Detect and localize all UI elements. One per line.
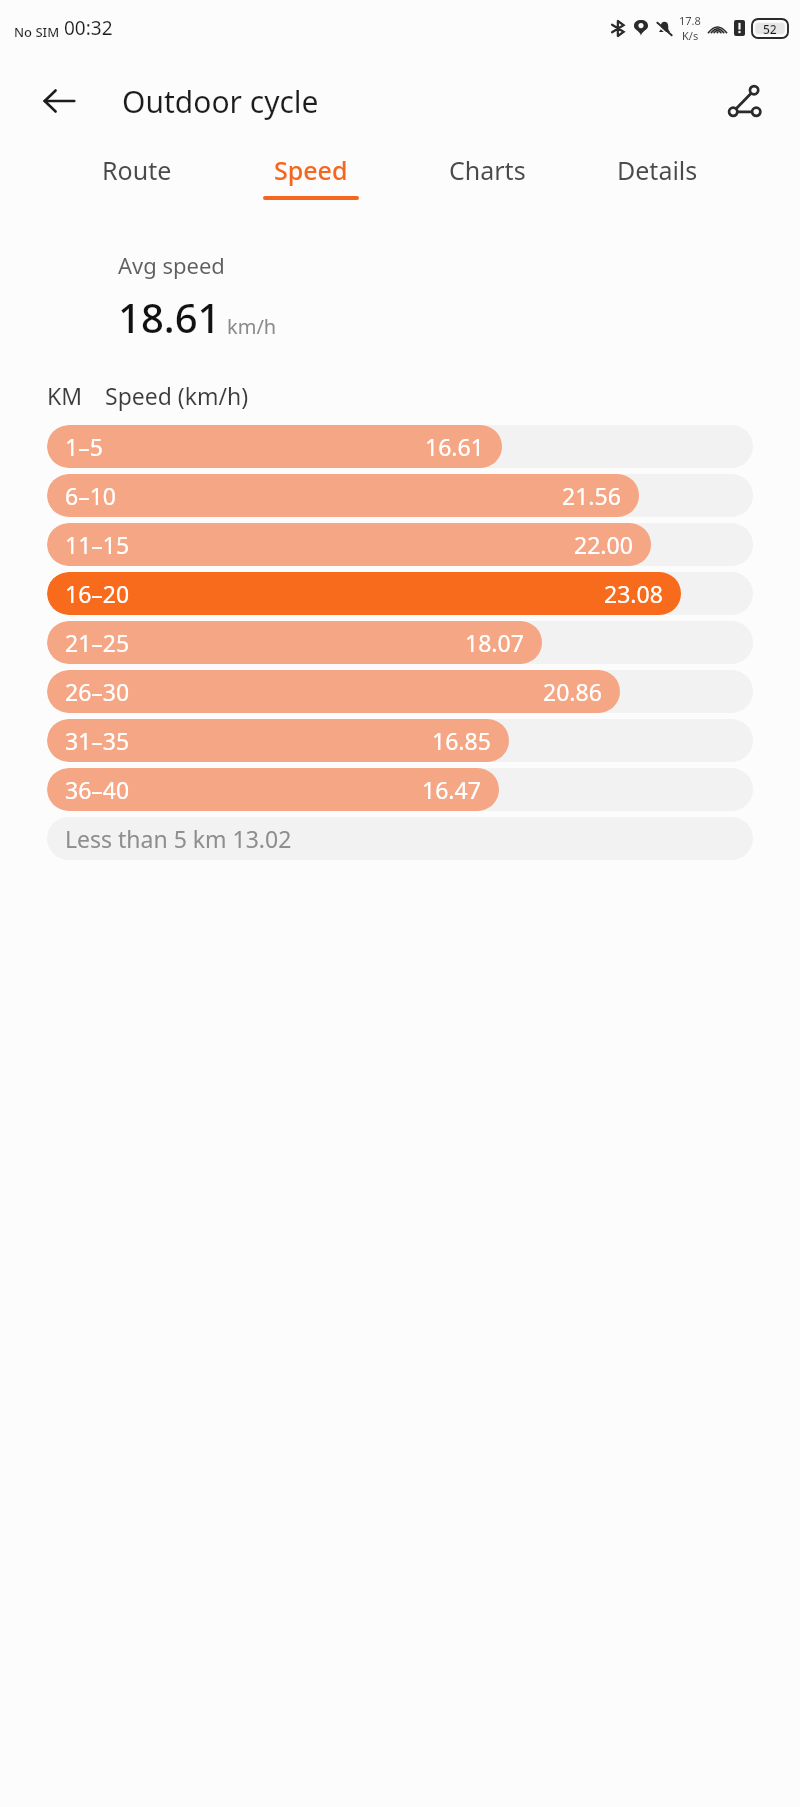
staticText: 22.00 [574,529,633,560]
button[interactable]: 36–40 [47,768,753,811]
button[interactable]: Less than 5 km 13.02 [47,817,753,860]
staticText: 23.08 [604,578,663,609]
staticText: 6–10 [65,480,116,511]
staticText: Charts [449,153,526,187]
staticText: Less than 5 km 13.02 [65,823,292,854]
staticText: K/s [682,28,699,43]
staticText: 11–15 [65,529,130,560]
button[interactable]: Speed [257,147,365,206]
staticText: 31–35 [65,725,130,756]
staticText: km/h [227,313,277,340]
staticText: KM [47,380,83,411]
staticText: 18.61 [118,290,221,344]
staticText: 16–20 [65,578,130,609]
staticText: 21–25 [65,627,130,658]
staticText: 17.8 [679,13,701,28]
staticText: Outdoor cycle [122,81,319,122]
button[interactable]: Back [34,76,84,126]
staticText: 52 [763,21,777,37]
staticText: 00:32 [64,15,113,41]
staticText: 16.47 [422,774,481,805]
staticText: Avg speed [118,250,225,280]
staticText: Speed [274,153,348,187]
button[interactable]: 1–5 [47,425,753,468]
staticText: Details [617,153,698,187]
staticText: Route [102,153,172,187]
button[interactable]: 26–30 [47,670,753,713]
staticText: 16.61 [425,431,484,462]
button[interactable]: 11–15 [47,523,753,566]
staticText: 21.56 [562,480,621,511]
button[interactable]: 16–20 [47,572,753,615]
staticText: 20.86 [543,676,602,707]
button[interactable]: Charts [443,147,532,206]
staticText: 16.85 [432,725,491,756]
button[interactable]: 31–35 [47,719,753,762]
button[interactable]: Details [611,147,704,206]
staticText: Speed (km/h) [105,380,249,411]
staticText: 26–30 [65,676,130,707]
button[interactable]: 6–10 [47,474,753,517]
staticText: 1–5 [65,431,103,462]
staticText: 36–40 [65,774,130,805]
staticText: No SIM [14,23,60,41]
button[interactable]: 21–25 [47,621,753,664]
button[interactable]: Share [716,73,772,129]
staticText: 18.07 [465,627,524,658]
button[interactable]: Route [96,147,178,206]
